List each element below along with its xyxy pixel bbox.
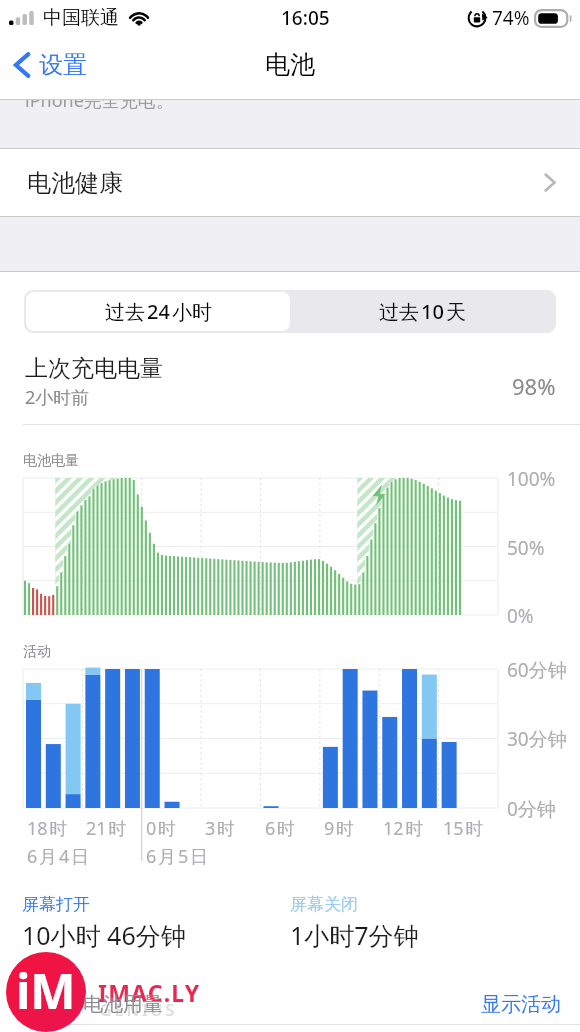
staticText: 6 月 4 日 — [27, 844, 89, 869]
staticText: 16:05 — [281, 5, 330, 31]
staticText: 0% — [507, 603, 534, 629]
other: Back — [13, 49, 31, 81]
staticText: 2小时前 — [25, 385, 90, 410]
staticText: 过去 24 小时 — [105, 298, 212, 325]
staticText: 设置 — [39, 50, 87, 80]
staticText: 6 时 — [265, 816, 296, 841]
staticText: 电池 — [265, 49, 315, 80]
other: Rotation lock — [467, 8, 487, 28]
staticText: 电池电量 — [23, 452, 79, 470]
staticText: 显示活动 — [481, 992, 561, 1017]
button[interactable]: 过去 10 天 — [290, 292, 554, 331]
staticText: 活动 — [23, 643, 51, 661]
staticText: 100% — [507, 466, 556, 492]
button[interactable]: 电池健康 — [0, 149, 580, 216]
staticText: 98% — [512, 371, 556, 401]
staticText: 电池健康 — [27, 168, 123, 198]
button[interactable]: 显示活动 — [481, 992, 561, 1017]
staticText: 15 时 — [443, 816, 484, 841]
button[interactable]: Back — [10, 45, 90, 85]
staticText: 30分钟 — [507, 726, 567, 752]
staticText: 3 时 — [205, 816, 236, 841]
staticText: 18 时 — [27, 816, 68, 841]
staticText: GENIUS — [100, 999, 178, 1021]
staticText: iPhone完全充电。 — [25, 100, 174, 113]
staticText: 1小时7分钟 — [290, 918, 419, 952]
staticText: 屏幕打开 — [22, 894, 90, 915]
staticText: 9 时 — [324, 816, 355, 841]
staticText: 12 时 — [383, 816, 424, 841]
staticText: 屏幕关闭 — [290, 894, 358, 915]
staticText: IMAC.LY — [98, 977, 201, 1008]
staticText: 过去 10 天 — [379, 298, 466, 325]
staticText: 74% — [492, 5, 530, 31]
staticText: 0 时 — [146, 816, 177, 841]
staticText: 60分钟 — [507, 657, 567, 683]
staticText: iM — [16, 958, 76, 1023]
staticText: 上次充电电量 — [25, 354, 163, 383]
staticText: 中国联通 — [43, 6, 119, 30]
staticText: 电池用量 — [83, 992, 163, 1017]
button[interactable]: 过去 24 小时 — [26, 292, 290, 331]
staticText: 50% — [507, 535, 545, 561]
staticText: 0分钟 — [507, 796, 556, 822]
staticText: 10小时 46分钟 — [22, 918, 186, 952]
staticText: 6 月 5 日 — [146, 844, 208, 869]
staticText: 21 时 — [86, 816, 127, 841]
